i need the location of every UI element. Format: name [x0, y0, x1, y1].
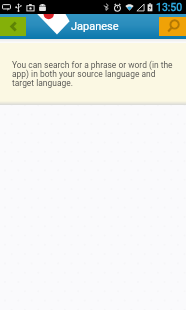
button[interactable]: Back — [0, 17, 26, 36]
staticText: 13:50 — [156, 1, 183, 13]
staticText: You can search for a phrase or word (in … — [12, 60, 186, 88]
button[interactable]: Search — [159, 17, 186, 36]
staticText: Japanese — [71, 20, 119, 33]
